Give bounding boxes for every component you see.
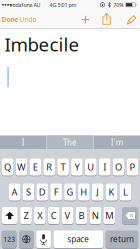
- button[interactable]: Z: [20, 206, 32, 224]
- button[interactable]: The: [48, 136, 92, 149]
- button[interactable]: Y: [71, 158, 83, 176]
- staticText: The: [63, 137, 77, 148]
- button[interactable]: M: [103, 206, 115, 224]
- staticText: 123: [3, 235, 15, 244]
- staticText: return: [110, 234, 134, 244]
- staticText: N: [92, 209, 99, 222]
- button[interactable]: Add: [80, 15, 90, 25]
- button[interactable]: C: [48, 206, 60, 224]
- staticText: M: [105, 209, 113, 222]
- button[interactable]: P: [127, 158, 138, 176]
- staticText: S: [26, 186, 31, 198]
- button[interactable]: W: [16, 158, 27, 176]
- staticText: O: [115, 161, 122, 173]
- staticText: Q: [4, 161, 11, 173]
- button[interactable]: S: [23, 183, 34, 201]
- button[interactable]: H: [78, 183, 90, 201]
- staticText: J: [96, 186, 99, 198]
- staticText: I'm: [111, 137, 123, 148]
- button[interactable]: Next keyboard: [19, 230, 34, 248]
- button[interactable]: B: [76, 206, 87, 224]
- staticText: E: [33, 161, 38, 173]
- button[interactable]: D: [36, 183, 48, 201]
- button[interactable]: X: [34, 206, 46, 224]
- button[interactable]: A: [9, 183, 20, 201]
- staticText: B: [78, 209, 84, 222]
- button[interactable]: Q: [2, 158, 13, 176]
- button[interactable]: V: [62, 206, 73, 224]
- staticText: X: [37, 209, 42, 222]
- button[interactable]: J: [92, 183, 104, 201]
- staticText: A: [11, 186, 17, 198]
- button[interactable]: Undo: [15, 13, 41, 26]
- staticText: 70%: [113, 1, 123, 8]
- button[interactable]: 123: [2, 230, 16, 248]
- button[interactable]: G: [64, 183, 76, 201]
- button[interactable]: Done: [0, 13, 23, 26]
- button[interactable]: I'm: [95, 136, 139, 149]
- staticText: G: [66, 186, 73, 198]
- button[interactable]: N: [90, 206, 101, 224]
- button[interactable]: Shift: [2, 206, 18, 224]
- staticText: 4G: [49, 1, 56, 8]
- staticText: D: [39, 186, 46, 198]
- staticText: L: [123, 186, 128, 198]
- button[interactable]: Delete: [122, 206, 138, 224]
- staticText: Undo: [19, 15, 36, 24]
- staticText: P: [129, 161, 135, 173]
- staticText: Done: [1, 15, 18, 24]
- staticText: U: [87, 161, 94, 173]
- button[interactable]: Sketch: [127, 14, 137, 25]
- staticText: V: [65, 209, 71, 222]
- staticText: 5:01 pm: [57, 1, 76, 8]
- button[interactable]: R: [43, 158, 55, 176]
- staticText: H: [80, 186, 87, 198]
- button[interactable]: L: [120, 183, 131, 201]
- staticText: Imbecile: [4, 32, 79, 57]
- staticText: R: [46, 161, 52, 173]
- staticText: I: [103, 161, 106, 173]
- staticText: Y: [74, 161, 79, 173]
- button[interactable]: space: [53, 230, 103, 248]
- button[interactable]: return: [106, 230, 138, 248]
- button[interactable]: F: [50, 183, 62, 201]
- button[interactable]: T: [57, 158, 69, 176]
- button[interactable]: I: [1, 136, 45, 149]
- staticText: vodafone AU: [9, 1, 40, 8]
- button[interactable]: E: [29, 158, 41, 176]
- button[interactable]: K: [106, 183, 117, 201]
- staticText: F: [54, 186, 59, 198]
- staticText: T: [61, 161, 66, 173]
- button[interactable]: Dictate: [36, 230, 51, 248]
- staticText: C: [51, 209, 57, 222]
- staticText: Z: [23, 209, 28, 222]
- staticText: space: [67, 234, 89, 244]
- staticText: I: [22, 137, 25, 148]
- button[interactable]: Share: [101, 13, 112, 25]
- staticText: W: [17, 161, 26, 173]
- staticText: K: [109, 186, 115, 198]
- button[interactable]: U: [85, 158, 97, 176]
- button[interactable]: O: [113, 158, 124, 176]
- button[interactable]: I: [99, 158, 110, 176]
